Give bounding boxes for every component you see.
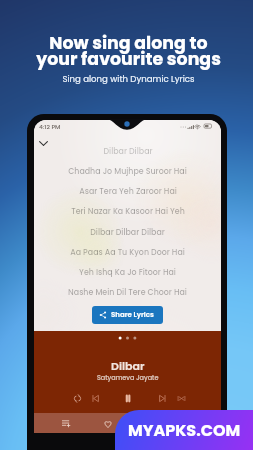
button[interactable]: Dilbar Dilbar (34, 143, 221, 159)
button[interactable]: Yeh Ishq Ka Jo Fitoor Hai (34, 264, 221, 280)
staticText: Share Lyrics (111, 310, 154, 320)
button[interactable]: Add to playlist (49, 413, 83, 433)
button[interactable]: Previous (86, 389, 104, 407)
staticText: Now sing along to (2, 31, 253, 55)
button[interactable]: Share Lyrics (92, 306, 163, 324)
button[interactable]: Next (153, 389, 171, 407)
staticText: Asar Tera Yeh Zaroor Hai (79, 186, 177, 197)
button[interactable]: Pause (118, 389, 136, 407)
button[interactable]: MYAPKS.COM (115, 410, 253, 450)
staticText: Dilbar Dilbar Dilbar (90, 227, 165, 238)
button[interactable]: Dilbar Dilbar Dilbar (34, 224, 221, 240)
staticText: 4:12 PM (39, 123, 61, 131)
staticText: MYAPKS.COM (128, 419, 241, 441)
staticText: Satyameva Jayate (97, 373, 159, 382)
staticText: Aa Paas Aa Tu Kyon Door Hai (70, 247, 185, 258)
staticText: Sing along with Dynamic Lyrics (2, 73, 253, 85)
button[interactable]: Shuffle (172, 389, 190, 407)
button[interactable]: Favourite (96, 413, 120, 433)
button[interactable]: Nashe Mein Dil Tere Choor Hai (34, 284, 221, 300)
staticText: Yeh Ishq Ka Jo Fitoor Hai (79, 267, 176, 278)
staticText: Dilbar Dilbar (103, 146, 153, 157)
staticText: Nashe Mein Dil Tere Choor Hai (68, 287, 187, 298)
staticText: your favourite songs (2, 47, 253, 71)
button[interactable]: Asar Tera Yeh Zaroor Hai (34, 183, 221, 199)
button[interactable]: Teri Nazar Ka Kasoor Hai Yeh (34, 203, 221, 219)
staticText: Dilbar (111, 358, 145, 373)
button[interactable]: Aa Paas Aa Tu Kyon Door Hai (34, 244, 221, 260)
button[interactable]: Repeat (68, 389, 86, 407)
staticText: Teri Nazar Ka Kasoor Hai Yeh (71, 206, 185, 217)
button[interactable]: Collapse (35, 137, 51, 149)
staticText: Chadha Jo Mujhpe Suroor Hai (68, 166, 187, 177)
button[interactable]: Chadha Jo Mujhpe Suroor Hai (34, 163, 221, 179)
